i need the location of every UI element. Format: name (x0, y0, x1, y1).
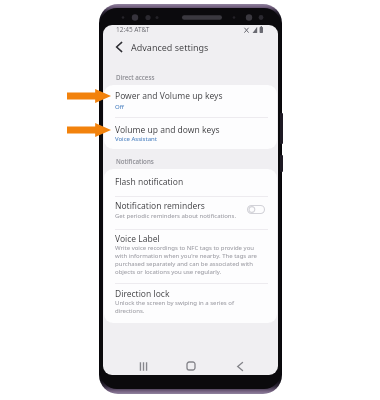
button[interactable]: Notification reminders toggle (241, 200, 271, 218)
staticText: Power and Volume up keys (115, 90, 223, 102)
staticText: Direction lock (115, 288, 170, 300)
staticText: Write voice recordings to NFC tags to pr… (115, 244, 257, 276)
staticText: Get periodic reminders about notificatio… (115, 212, 265, 220)
staticText: Voice Assistant (115, 135, 265, 143)
staticText: Off (115, 103, 265, 111)
staticText: Voice Label (115, 233, 160, 245)
staticText: Advanced settings (131, 41, 209, 53)
button[interactable]: Flash notification (104, 172, 277, 189)
staticText: Flash notification (115, 176, 184, 188)
staticText: Direct access (116, 73, 155, 81)
button[interactable]: Direction lock (104, 284, 277, 301)
button[interactable]: Back (106, 36, 132, 58)
button[interactable]: Home (179, 354, 203, 375)
staticText: Notification reminders (115, 200, 205, 212)
staticText: Notifications (116, 157, 154, 165)
button[interactable]: Recent apps (131, 354, 155, 375)
button[interactable]: Voice Label (104, 229, 277, 246)
button[interactable]: Volume up and down keys (104, 120, 277, 137)
staticText: 12:45 AT&T (116, 25, 150, 34)
staticText: Unlock the screen by swiping in a series… (115, 299, 257, 315)
staticText: Volume up and down keys (115, 124, 220, 136)
button[interactable]: Notification reminders (104, 196, 277, 213)
button[interactable]: Back (228, 354, 252, 375)
button[interactable]: Power and Volume up keys (104, 86, 277, 103)
